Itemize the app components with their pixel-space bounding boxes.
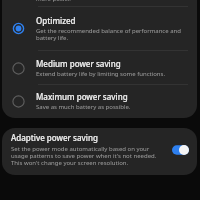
button[interactable]: Adaptive power saving toggle (172, 140, 189, 160)
staticText: Save as much battery as possible. (36, 103, 131, 111)
staticText: Set the power mode automatically based o… (11, 145, 157, 167)
button[interactable]: Medium power saving (2, 50, 197, 85)
button[interactable]: Adaptive power saving (2, 128, 197, 175)
button[interactable]: High performance (2, 0, 197, 6)
button[interactable]: Maximum power saving (2, 84, 197, 118)
button[interactable]: Optimized (2, 7, 197, 50)
staticText: Extend battery life by limiting some fun… (36, 70, 166, 78)
staticText: Adaptive power saving (11, 132, 98, 143)
staticText: Get the recommended balance of performan… (36, 27, 181, 42)
staticText: Maximum power saving (36, 91, 128, 102)
staticText: Optimize for the best screen resolution … (36, 0, 176, 3)
staticText: Optimized (36, 15, 76, 26)
staticText: Medium power saving (36, 58, 121, 69)
